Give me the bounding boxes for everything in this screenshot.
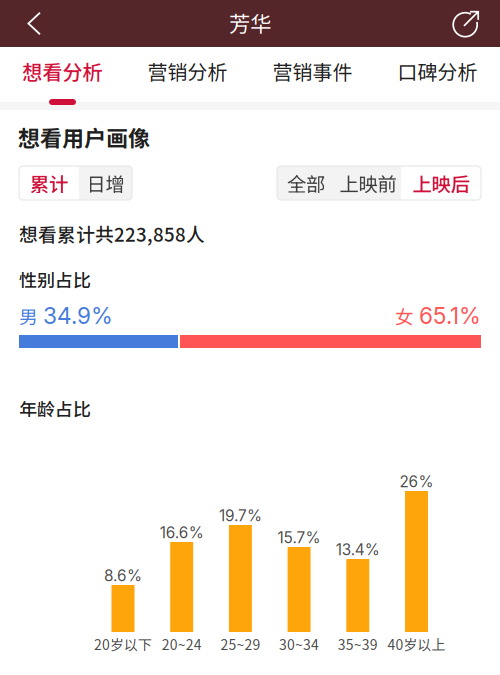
staticText: 65.1%	[419, 302, 481, 329]
staticText: 20岁以下	[94, 634, 152, 654]
staticText: 想看分析	[22, 56, 102, 85]
button[interactable]: 累计	[19, 166, 79, 200]
button[interactable]: 全部	[277, 166, 335, 200]
staticText: 13.4%	[336, 540, 380, 559]
button[interactable]: 上映前	[335, 166, 401, 200]
staticText: 19.7%	[219, 506, 262, 525]
button[interactable]: 口碑分析	[375, 47, 500, 105]
staticText: 25~29	[220, 634, 260, 654]
staticText: 40岁以上	[387, 634, 445, 654]
button[interactable]: 分享	[443, 0, 500, 47]
staticText: 芳华	[229, 7, 271, 38]
staticText: 35~39	[338, 634, 378, 654]
staticText: 女	[395, 302, 414, 329]
staticText: 年龄占比	[19, 395, 91, 421]
button[interactable]: 营销事件	[250, 47, 375, 105]
staticText: 上映后	[412, 169, 469, 197]
staticText: 想看用户画像	[18, 121, 150, 153]
button[interactable]: 营销分析	[125, 47, 250, 105]
staticText: 日增	[86, 169, 124, 197]
button[interactable]: 上映后	[401, 166, 481, 200]
staticText: 性别占比	[19, 266, 91, 292]
staticText: 上映前	[339, 169, 396, 197]
staticText: 营销分析	[147, 56, 227, 85]
staticText: 16.6%	[160, 523, 204, 542]
staticText: 营销事件	[272, 56, 352, 85]
button[interactable]: 想看分析	[0, 47, 125, 105]
staticText: 34.9%	[43, 302, 113, 329]
staticText: 男	[19, 302, 38, 329]
button[interactable]: 日增	[79, 166, 132, 200]
staticText: 8.6%	[104, 566, 142, 585]
staticText: 15.7%	[278, 528, 321, 547]
staticText: 26%	[399, 472, 433, 491]
button[interactable]: 返回	[0, 0, 56, 47]
staticText: 累计	[30, 169, 68, 197]
staticText: 全部	[287, 169, 325, 197]
staticText: 想看累计共223,858人	[19, 220, 205, 247]
staticText: 20~24	[162, 634, 202, 654]
staticText: 口碑分析	[397, 56, 477, 85]
staticText: 30~34	[279, 634, 319, 654]
